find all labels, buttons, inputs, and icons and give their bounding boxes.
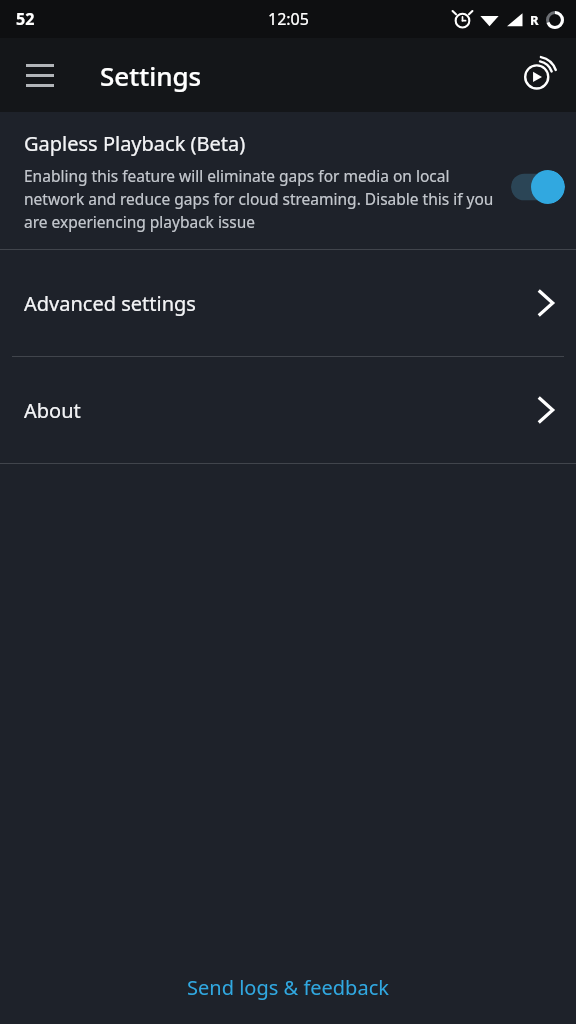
staticText: R: [530, 11, 539, 29]
staticText: Send logs & feedback: [187, 974, 389, 1001]
staticText: 52: [16, 8, 35, 30]
staticText: Advanced settings: [24, 290, 538, 317]
staticText: Enabling this feature will eliminate gap…: [24, 165, 499, 233]
staticText: 12:05: [268, 8, 309, 30]
staticText: Gapless Playback (Beta): [24, 130, 246, 157]
button[interactable]: Send logs & feedback: [0, 950, 576, 1024]
button[interactable]: About: [0, 357, 576, 463]
button[interactable]: Cast to device: [510, 47, 566, 103]
button[interactable]: Advanced settings: [0, 250, 576, 356]
staticText: About: [24, 397, 538, 424]
staticText: Settings: [100, 58, 202, 93]
button[interactable]: Gapless Playback (Beta): [0, 112, 576, 249]
button[interactable]: Gapless Playback toggle, on: [511, 170, 565, 204]
button[interactable]: Open navigation menu: [10, 45, 70, 105]
